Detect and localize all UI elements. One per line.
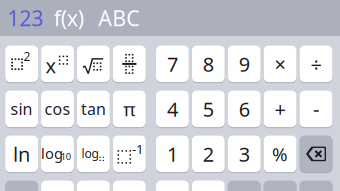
staticText: 10 <box>61 150 71 163</box>
button[interactable]: log base 10 <box>41 135 74 173</box>
staticText: sin <box>11 98 33 119</box>
staticText: log <box>81 145 98 161</box>
button[interactable]: 5 <box>192 90 225 128</box>
button[interactable] <box>113 180 146 191</box>
staticText: 9 <box>239 51 250 77</box>
button[interactable]: 6 <box>228 90 261 128</box>
staticText: ln <box>13 141 30 167</box>
staticText: 2 <box>23 48 30 64</box>
button[interactable]: × <box>264 45 296 83</box>
staticText: ÷ <box>310 51 321 77</box>
button[interactable]: % <box>264 135 296 173</box>
button[interactable]: 2 <box>192 135 225 173</box>
button[interactable]: Squared <box>5 45 38 83</box>
button[interactable]: Square root <box>77 45 110 83</box>
staticText: 5 <box>203 96 214 122</box>
staticText: 1 <box>167 141 178 167</box>
staticText: π <box>123 96 135 121</box>
staticText: 8 <box>203 51 214 77</box>
button[interactable]: - <box>300 90 332 128</box>
button[interactable] <box>77 180 110 191</box>
staticText: f(x) <box>54 4 84 32</box>
button[interactable]: π <box>113 90 146 128</box>
staticText: + <box>275 96 286 122</box>
staticText: % <box>272 141 288 166</box>
button[interactable] <box>192 180 225 191</box>
staticText: tan <box>81 98 106 119</box>
staticText: ABC <box>98 4 139 32</box>
staticText: 6 <box>239 96 250 122</box>
button[interactable] <box>156 180 189 191</box>
button[interactable]: 3 <box>228 135 261 173</box>
staticText: 3 <box>239 141 250 167</box>
button[interactable]: ABC <box>93 0 144 36</box>
button[interactable] <box>228 180 261 191</box>
button[interactable]: + <box>264 90 296 128</box>
button[interactable]: Inverse <box>113 135 146 173</box>
button[interactable]: 8 <box>192 45 225 83</box>
button[interactable]: 123 <box>2 0 48 36</box>
button[interactable]: Fraction <box>113 45 146 83</box>
button[interactable]: 4 <box>156 90 189 128</box>
button[interactable]: sin <box>5 90 38 128</box>
button[interactable]: 1 <box>156 135 189 173</box>
button[interactable] <box>41 180 74 191</box>
staticText: 7 <box>167 51 178 77</box>
button[interactable]: 7 <box>156 45 189 83</box>
staticText: -1 <box>132 140 144 158</box>
staticText: log <box>41 144 63 163</box>
button[interactable] <box>5 180 38 191</box>
button[interactable]: ÷ <box>300 45 332 83</box>
button[interactable]: 9 <box>228 45 261 83</box>
staticText: 4 <box>167 96 178 122</box>
staticText: cos <box>44 98 70 119</box>
button[interactable]: Delete <box>300 135 332 173</box>
button[interactable]: f(x) <box>49 0 89 36</box>
button[interactable] <box>300 180 332 191</box>
button[interactable]: Power <box>41 45 74 83</box>
button[interactable]: ln <box>5 135 38 173</box>
staticText: 123 <box>7 4 43 32</box>
button[interactable]: log base <box>77 135 110 173</box>
staticText: × <box>275 51 286 77</box>
staticText: 2 <box>203 141 214 167</box>
button[interactable]: cos <box>41 90 74 128</box>
button[interactable] <box>264 180 296 191</box>
staticText: - <box>313 96 319 122</box>
staticText: x <box>45 52 56 79</box>
button[interactable]: tan <box>77 90 110 128</box>
